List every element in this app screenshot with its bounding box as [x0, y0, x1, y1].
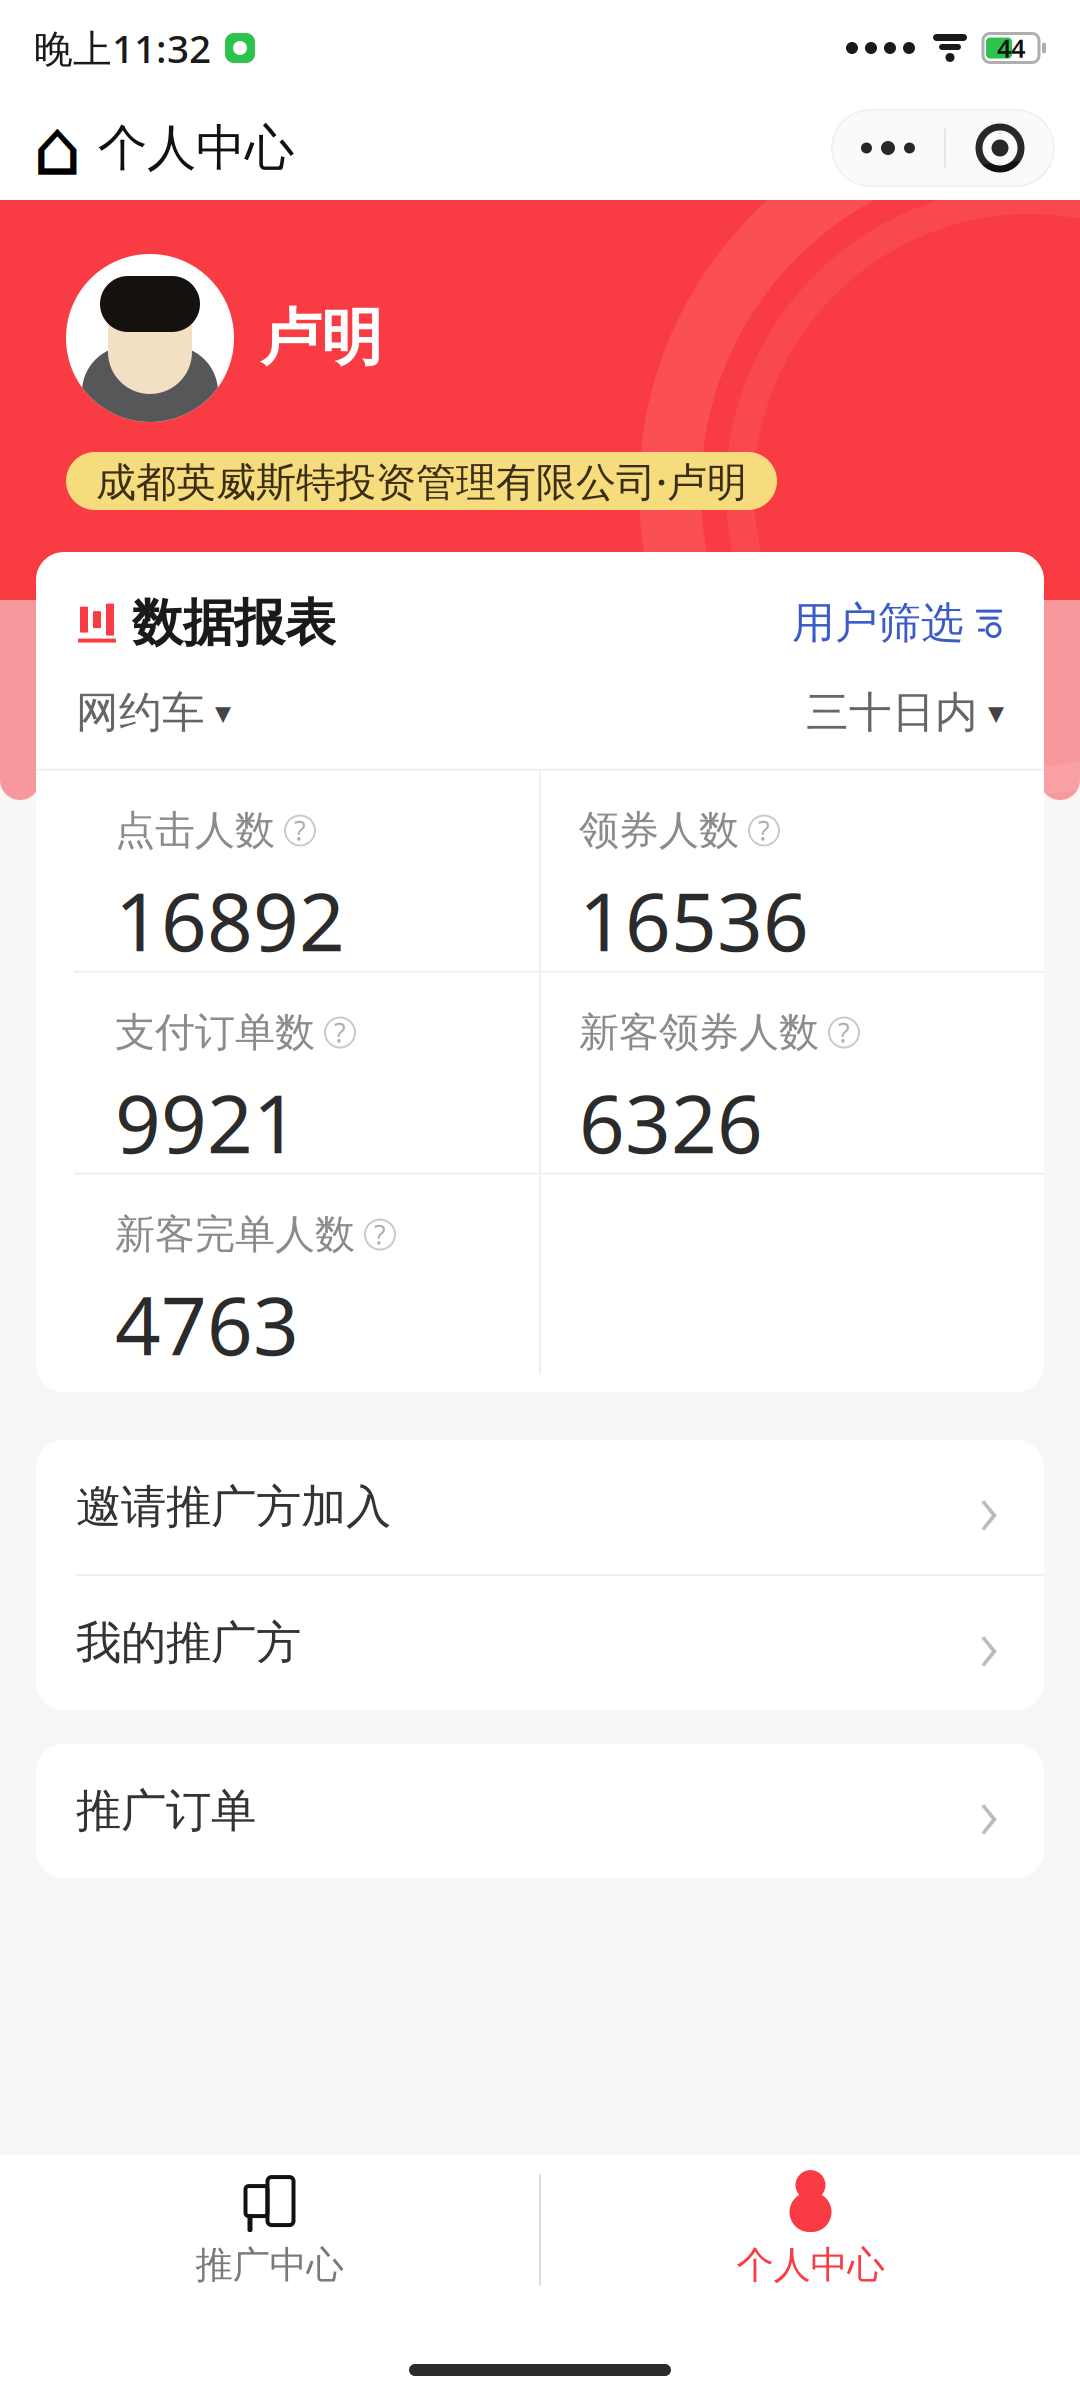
staticText: 网约车 — [76, 686, 205, 739]
staticText: 点击人数 — [115, 806, 275, 855]
staticText: 卢明 — [260, 300, 382, 376]
button[interactable]: 成都英威斯特投资管理有限公司·卢明 — [66, 452, 777, 510]
staticText: 支付订单数 — [115, 1008, 315, 1057]
staticText: 邀请推广方加入 — [76, 1479, 391, 1535]
staticText: 数据报表 — [132, 592, 336, 654]
button[interactable]: 关闭 — [946, 110, 1054, 186]
staticText: ? — [294, 813, 306, 848]
staticText: ▾ — [988, 694, 1004, 731]
button[interactable]: 我的推广方 — [36, 1576, 1044, 1710]
staticText: 9921 — [115, 1069, 299, 1175]
staticText: 领券人数 — [579, 806, 739, 855]
staticText: ? — [758, 813, 770, 848]
staticText: 4763 — [115, 1271, 299, 1377]
staticText: › — [979, 1457, 999, 1557]
staticText: 个人中心 — [736, 2242, 884, 2288]
button[interactable]: 首页 — [34, 112, 294, 184]
staticText: 新客领券人数 — [579, 1008, 819, 1057]
staticText: ⌂ — [32, 104, 81, 192]
staticText: ▾ — [215, 694, 231, 731]
button[interactable]: 网约车 — [76, 686, 231, 739]
button[interactable]: 三十日内 — [806, 686, 1004, 739]
staticText: 推广中心 — [195, 2242, 343, 2288]
staticText: 晚上11:32 — [34, 22, 211, 74]
staticText: 成都英威斯特投资管理有限公司·卢明 — [96, 454, 747, 507]
staticText: 我的推广方 — [76, 1615, 301, 1671]
staticText: 用户筛选 — [792, 597, 964, 649]
staticText: › — [979, 1761, 999, 1861]
staticText: 三十日内 — [806, 686, 978, 739]
staticText: › — [979, 1593, 999, 1693]
button[interactable]: 推广中心 — [0, 2155, 539, 2305]
button[interactable]: 更多 — [832, 110, 944, 186]
staticText: ? — [374, 1217, 386, 1252]
button[interactable]: 邀请推广方加入 — [36, 1440, 1044, 1574]
button[interactable]: 用户筛选 — [792, 597, 1004, 649]
staticText: 个人中心 — [98, 118, 294, 178]
button[interactable]: 推广订单 — [36, 1744, 1044, 1878]
staticText: ? — [334, 1015, 346, 1050]
staticText: 6326 — [579, 1069, 763, 1175]
staticText: 16536 — [579, 867, 809, 973]
staticText: 新客完单人数 — [115, 1210, 355, 1259]
staticText: 16892 — [115, 867, 345, 973]
staticText: ? — [838, 1015, 850, 1050]
staticText: 推广订单 — [76, 1783, 256, 1839]
button[interactable]: 个人中心 — [541, 2155, 1080, 2305]
staticText: 44 — [997, 31, 1025, 65]
